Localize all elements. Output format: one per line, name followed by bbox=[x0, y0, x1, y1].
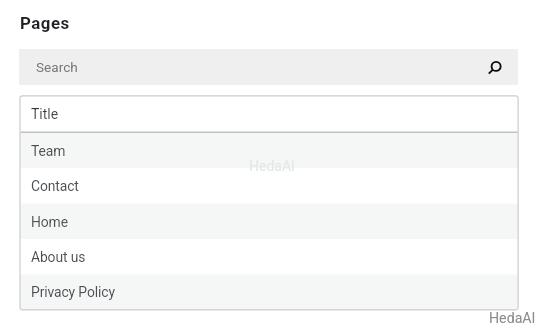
staticText: Title bbox=[31, 106, 59, 122]
button[interactable]: Title bbox=[19, 95, 518, 132]
staticText: HedaAI bbox=[249, 158, 295, 174]
staticText: Team bbox=[31, 143, 66, 159]
button[interactable]: Team bbox=[19, 133, 518, 168]
button[interactable]: About us bbox=[19, 239, 518, 274]
staticText: Home bbox=[31, 214, 68, 230]
staticText: Search bbox=[36, 59, 78, 75]
button[interactable]: Home bbox=[19, 204, 518, 239]
button[interactable]: Privacy Policy bbox=[19, 274, 518, 309]
staticText: Pages bbox=[20, 13, 70, 33]
staticText: HedaAI bbox=[489, 310, 536, 327]
button[interactable]: Contact bbox=[19, 168, 518, 203]
staticText: Privacy Policy bbox=[31, 284, 115, 300]
staticText: Contact bbox=[31, 178, 79, 194]
staticText: About us bbox=[31, 249, 86, 265]
button[interactable]: Search bbox=[19, 49, 518, 85]
button[interactable]: Search bbox=[485, 56, 507, 78]
